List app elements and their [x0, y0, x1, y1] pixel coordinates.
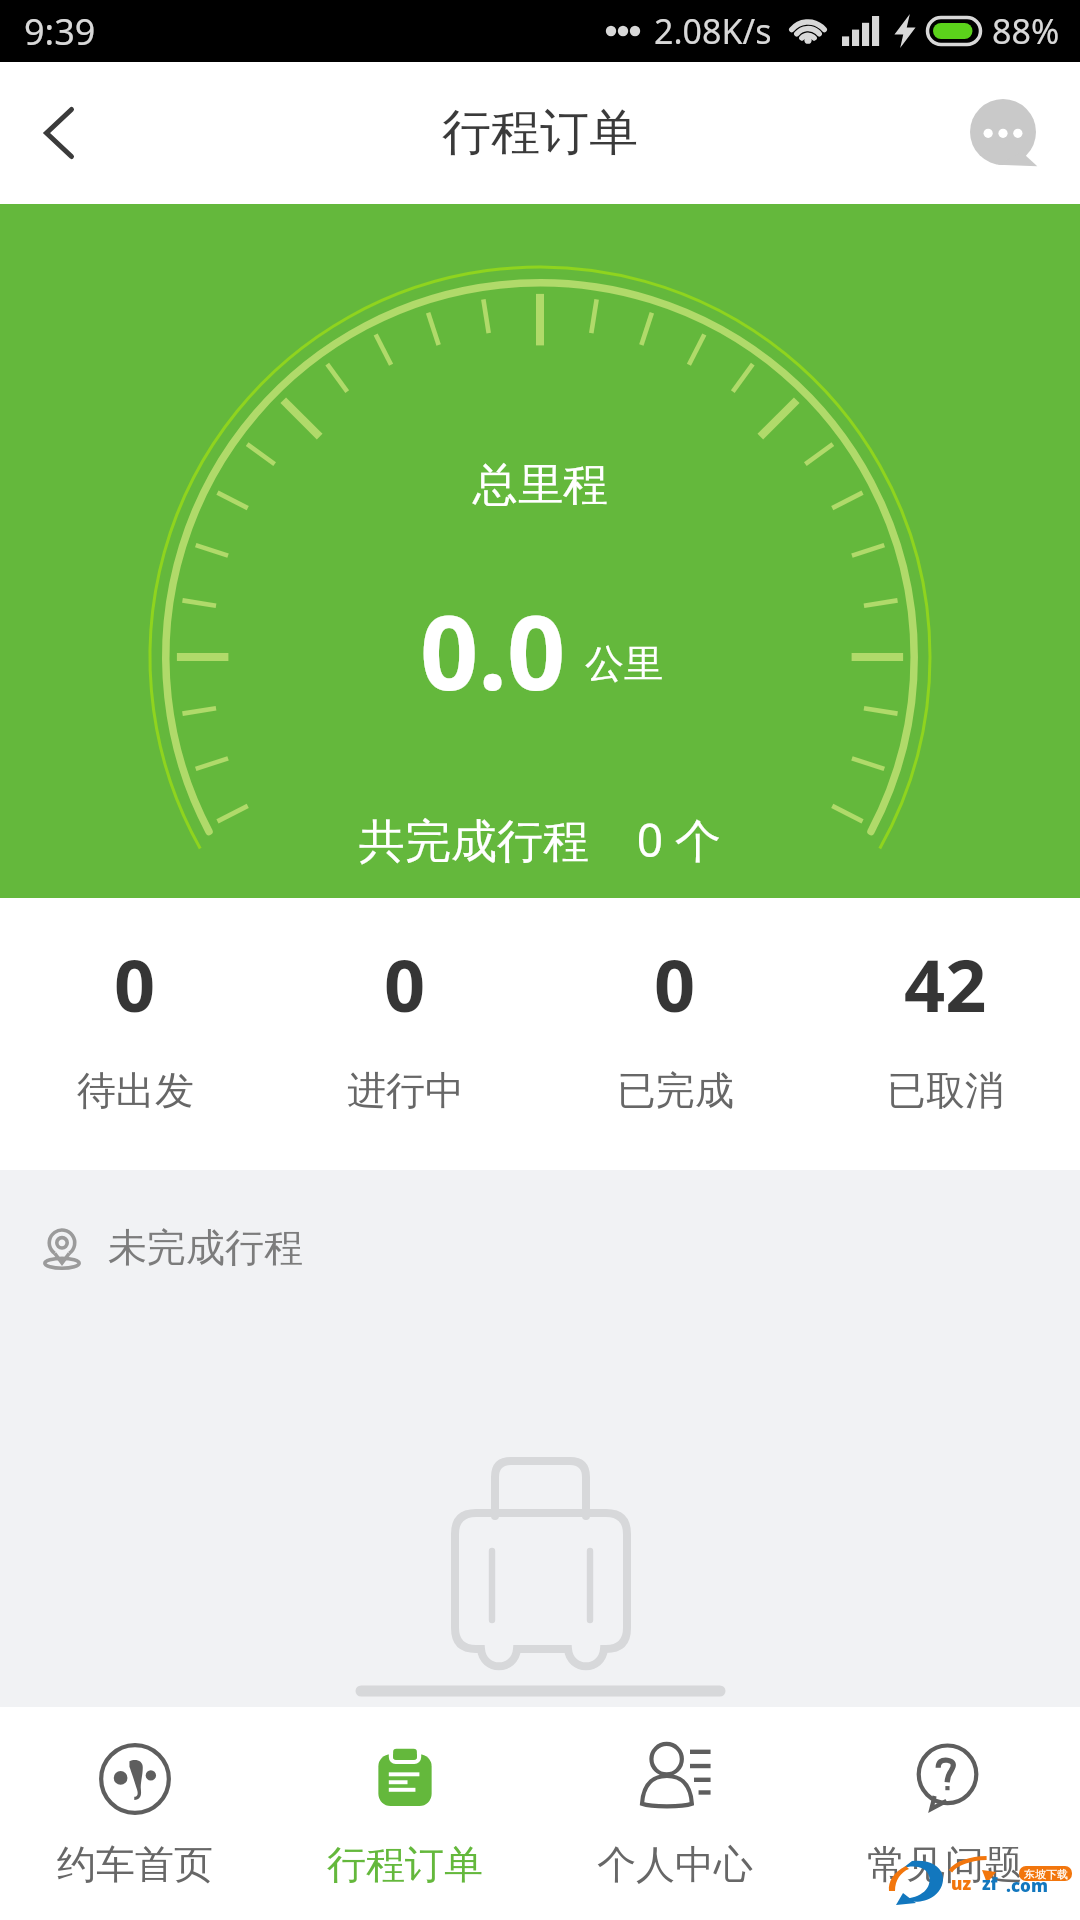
staticText: 个人中心	[597, 1840, 753, 1889]
staticText: zf	[982, 1872, 998, 1895]
button[interactable]: 常见问题	[810, 1707, 1080, 1920]
staticText: 常见问题	[867, 1840, 1023, 1889]
staticText: 已取消	[887, 1066, 1004, 1115]
staticText: 0.0	[420, 581, 566, 720]
staticText: 已完成	[617, 1066, 734, 1115]
staticText: 总里程	[473, 457, 608, 514]
staticText: 进行中	[347, 1066, 464, 1115]
button[interactable]: 未完成行程	[0, 1170, 1080, 1325]
staticText: 行程订单	[442, 102, 638, 164]
staticText: 待出发	[77, 1066, 194, 1115]
staticText: 2.08K/s	[654, 8, 772, 54]
button[interactable]: 42	[810, 898, 1080, 1170]
button[interactable]: 个人中心	[540, 1707, 810, 1920]
staticText: 42	[904, 935, 987, 1033]
button[interactable]: 0	[0, 898, 270, 1170]
staticText: 0	[384, 935, 426, 1033]
button[interactable]: 0	[540, 898, 810, 1170]
staticText: 东坡下载	[1024, 1867, 1068, 1881]
staticText: 9:39	[24, 7, 96, 56]
staticText: 0	[114, 935, 156, 1033]
button[interactable]: 行程订单	[270, 1707, 540, 1920]
staticText: 88%	[992, 8, 1060, 54]
button[interactable]: Messages	[955, 88, 1051, 184]
staticText: 约车首页	[57, 1840, 213, 1889]
staticText: 共完成行程 0 个	[359, 808, 722, 871]
button[interactable]: 约车首页	[0, 1707, 270, 1920]
staticText: 行程订单	[327, 1840, 483, 1889]
button[interactable]: 0	[270, 898, 540, 1170]
staticText: .com	[1006, 1874, 1048, 1897]
staticText: 0	[654, 935, 696, 1033]
staticText: uz	[951, 1872, 972, 1895]
staticText: 未完成行程	[108, 1223, 303, 1272]
staticText: 公里	[585, 639, 663, 688]
button[interactable]: Back	[5, 62, 113, 204]
